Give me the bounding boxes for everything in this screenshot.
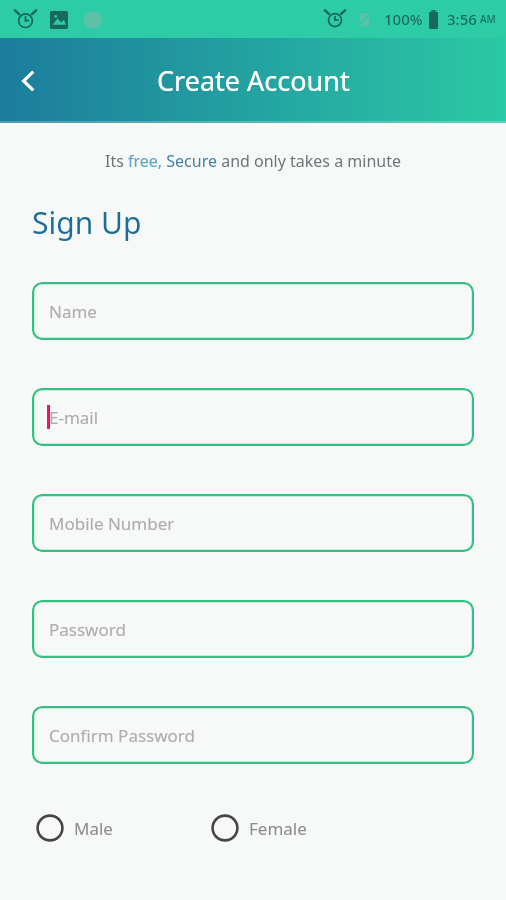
staticText: 3:56 xyxy=(447,9,477,29)
staticText: Male xyxy=(74,817,113,840)
staticText: Mobile Number xyxy=(49,512,175,535)
staticText: Password xyxy=(49,618,126,641)
staticText: Sign Up xyxy=(32,202,142,243)
button[interactable]: Male xyxy=(32,808,117,848)
button[interactable]: Female xyxy=(207,808,311,848)
staticText: 100% xyxy=(384,9,423,29)
button[interactable]: Mobile Number xyxy=(32,494,474,552)
staticText: E-mail xyxy=(49,406,99,429)
staticText: Name xyxy=(49,300,97,323)
staticText: Female xyxy=(249,817,307,840)
button[interactable]: Name xyxy=(32,282,474,340)
staticText: Create Account xyxy=(157,62,350,99)
staticText: Its free, Secure and only takes a minute xyxy=(105,150,401,172)
button[interactable]: Password xyxy=(32,600,474,658)
button[interactable]: Back xyxy=(0,53,56,109)
button[interactable]: E-mail xyxy=(32,388,474,446)
staticText: AM xyxy=(480,12,496,26)
button[interactable]: Confirm Password xyxy=(32,706,474,764)
staticText: Confirm Password xyxy=(49,724,195,747)
